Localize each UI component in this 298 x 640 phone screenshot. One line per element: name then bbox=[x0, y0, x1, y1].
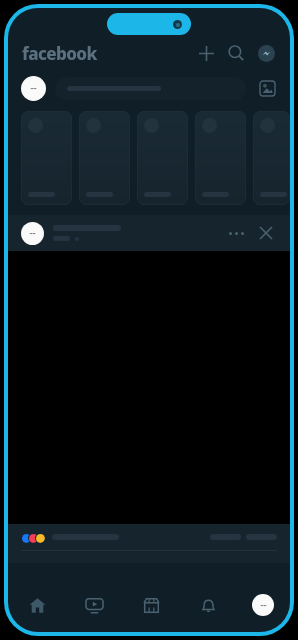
button[interactable]: Search bbox=[224, 41, 248, 65]
button[interactable]: Story bbox=[253, 111, 290, 205]
button[interactable]: Video bbox=[79, 590, 109, 620]
button[interactable]: Profile menu bbox=[250, 592, 276, 618]
button[interactable]: Messenger bbox=[254, 41, 278, 65]
staticText: •••• bbox=[30, 86, 37, 91]
staticText: •••• bbox=[29, 231, 36, 236]
button[interactable]: Marketplace bbox=[136, 590, 166, 620]
button[interactable]: Photo bbox=[256, 77, 278, 99]
button[interactable]: Story bbox=[21, 111, 72, 205]
button[interactable]: Create bbox=[194, 41, 218, 65]
button[interactable]: More options bbox=[224, 221, 248, 245]
button[interactable]: Story bbox=[137, 111, 188, 205]
button[interactable]: Home bbox=[22, 590, 52, 620]
button[interactable]: Story bbox=[195, 111, 246, 205]
button[interactable]: Story bbox=[79, 111, 130, 205]
button[interactable]: Close bbox=[254, 221, 278, 245]
button[interactable]: Notifications bbox=[193, 590, 223, 620]
staticText: •••• bbox=[260, 603, 267, 608]
staticText: facebook bbox=[22, 42, 97, 65]
button[interactable]: What's on your mind bbox=[55, 77, 246, 100]
